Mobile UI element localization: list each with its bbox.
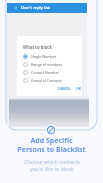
staticText: Range of numbers <box>31 62 63 67</box>
staticText: Add Specific Persons to Blacklist <box>17 136 86 154</box>
staticText: Group of Contacts <box>31 78 62 83</box>
staticText: What to block <box>23 44 52 50</box>
staticText: Single Number <box>31 54 57 59</box>
staticText: OK <box>76 86 81 91</box>
button[interactable]: CANCEL <box>58 86 71 91</box>
button[interactable]: Group of Contacts <box>23 76 79 84</box>
staticText: Contact Number <box>31 70 59 75</box>
staticText: Choose which contacts you'd like to bloc… <box>24 158 80 172</box>
button[interactable]: Contact Number <box>23 68 79 76</box>
button[interactable]: Single Number <box>23 52 79 60</box>
button[interactable]: OK <box>76 86 81 91</box>
button[interactable]: Range of numbers <box>23 60 79 68</box>
button[interactable]: Blocked <box>44 123 58 137</box>
staticText: Don't reply list <box>21 5 50 11</box>
staticText: CANCEL <box>58 86 71 91</box>
button[interactable]: Back <box>14 6 18 10</box>
